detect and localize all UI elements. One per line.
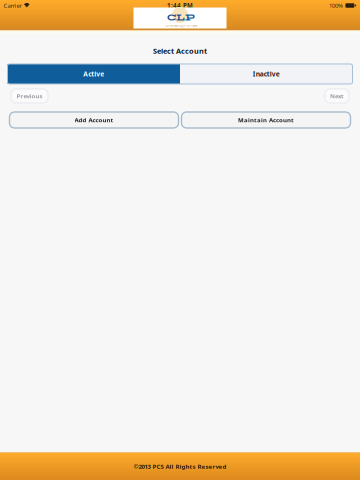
- staticText: Previous: [16, 92, 42, 100]
- staticText: 100%: [329, 1, 343, 10]
- button[interactable]: Previous: [11, 89, 48, 103]
- button[interactable]: Next: [325, 89, 349, 103]
- button[interactable]: Add Account: [9, 112, 178, 128]
- button[interactable]: Maintain Account: [181, 112, 350, 128]
- staticText: Active: [83, 69, 104, 78]
- staticText: 1:44 PM: [167, 1, 193, 10]
- button[interactable]: Active: [7, 64, 180, 84]
- button[interactable]: Inactive: [180, 64, 352, 84]
- staticText: Carrier: [3, 1, 21, 10]
- staticText: Next: [330, 92, 344, 100]
- staticText: Maintain Account: [238, 116, 294, 124]
- staticText: Add Account: [74, 116, 113, 124]
- staticText: Inactive: [253, 69, 280, 78]
- staticText: Consumers Light & Power: [164, 24, 197, 27]
- staticText: CLP: [167, 12, 195, 24]
- staticText: ©2013 PCS All Rights Reserved: [133, 462, 226, 471]
- staticText: Select Account: [153, 46, 207, 56]
